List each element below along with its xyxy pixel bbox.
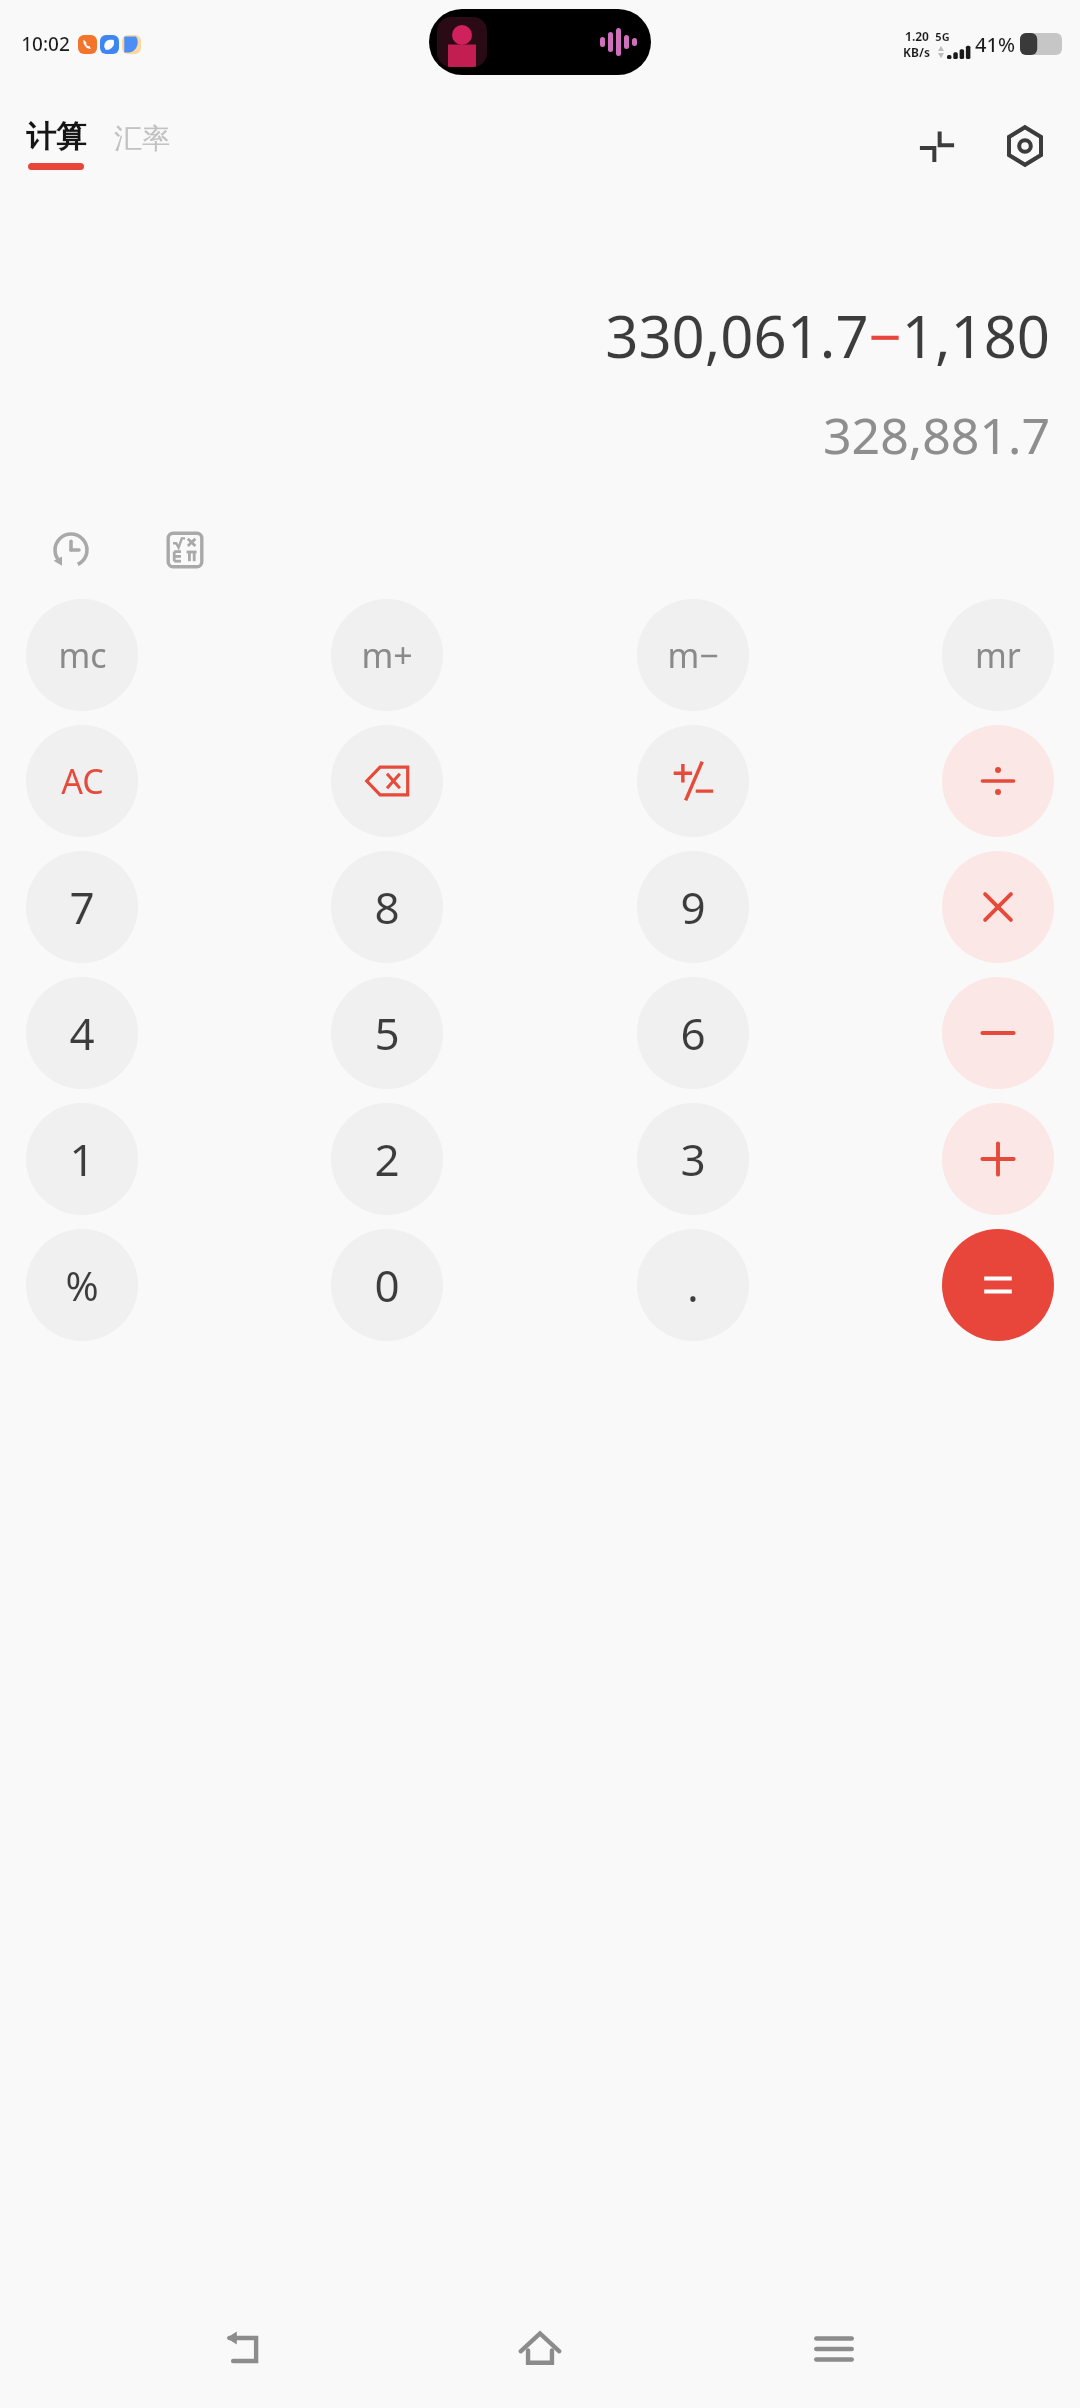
staticText: 330,061.7−1,180 (605, 296, 1050, 375)
button[interactable]: 8 (331, 851, 443, 963)
button[interactable]: 0 (331, 1229, 443, 1341)
button[interactable]: AC (26, 725, 138, 837)
staticText: 328,881.7 (823, 401, 1050, 469)
staticText: 1 (69, 1129, 95, 1189)
staticText: % (65, 1258, 99, 1312)
staticText: m− (667, 632, 719, 678)
button[interactable]: History (38, 517, 104, 583)
staticText: . (687, 1255, 699, 1315)
button[interactable]: 计算 (26, 118, 86, 170)
staticText: mc (58, 632, 107, 678)
button[interactable]: 7 (26, 851, 138, 963)
button[interactable]: m+ (331, 599, 443, 711)
staticText: KB/s (903, 44, 930, 60)
staticText: 41% (975, 31, 1015, 58)
button[interactable]: Add (942, 1103, 1054, 1215)
staticText: mr (975, 632, 1021, 678)
button[interactable]: 5 (331, 977, 443, 1089)
button[interactable]: 6 (637, 977, 749, 1089)
staticText: 0 (374, 1255, 400, 1315)
button[interactable]: mc (26, 599, 138, 711)
button[interactable]: Plus minus (637, 725, 749, 837)
staticText: 汇率 (114, 121, 170, 156)
staticText: 6 (680, 1003, 706, 1063)
staticText: AC (61, 758, 104, 804)
button[interactable]: Subtract (942, 977, 1054, 1089)
staticText: 5 (374, 1003, 400, 1063)
button[interactable]: Divide (942, 725, 1054, 837)
staticText: 7 (69, 877, 95, 937)
button[interactable]: Settings (994, 115, 1056, 177)
button[interactable]: Equals (942, 1229, 1054, 1341)
staticText: 10:02 (21, 31, 70, 57)
staticText: 4 (69, 1003, 95, 1063)
button[interactable]: Scientific (152, 517, 218, 583)
button[interactable]: 4 (26, 977, 138, 1089)
staticText: m+ (361, 632, 413, 678)
button[interactable]: 2 (331, 1103, 443, 1215)
staticText: 3 (680, 1129, 706, 1189)
button[interactable]: 汇率 (114, 121, 170, 170)
staticText: 9 (680, 877, 706, 937)
button[interactable]: Home (492, 2301, 588, 2397)
button[interactable]: % (26, 1229, 138, 1341)
staticText: 5G (935, 29, 950, 44)
button[interactable]: Backspace (331, 725, 443, 837)
staticText: 2 (374, 1129, 400, 1189)
button[interactable]: Recents (786, 2301, 882, 2397)
button[interactable]: 9 (637, 851, 749, 963)
button[interactable]: mr (942, 599, 1054, 711)
button[interactable]: . (637, 1229, 749, 1341)
button[interactable]: 1 (26, 1103, 138, 1215)
staticText: 8 (374, 877, 400, 937)
button[interactable]: Back (198, 2301, 294, 2397)
staticText: 1.20 (905, 28, 929, 44)
staticText: 计算 (26, 118, 86, 156)
button[interactable]: Collapse (906, 115, 968, 177)
button[interactable]: m− (637, 599, 749, 711)
button[interactable]: 3 (637, 1103, 749, 1215)
button[interactable]: Multiply (942, 851, 1054, 963)
